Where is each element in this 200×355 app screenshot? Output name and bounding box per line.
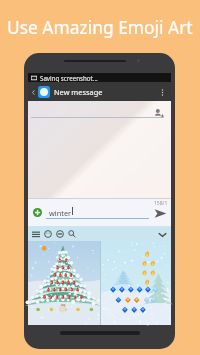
button[interactable]: Add attachment bbox=[33, 208, 42, 217]
button[interactable]: Back bbox=[29, 88, 37, 96]
button[interactable] bbox=[101, 241, 171, 325]
staticText: winter bbox=[49, 208, 72, 218]
button[interactable] bbox=[28, 241, 100, 325]
staticText: Use Amazing Emoji Art bbox=[7, 15, 193, 39]
button[interactable]: Send bbox=[152, 205, 168, 221]
button[interactable]: Menu bbox=[30, 228, 42, 240]
button[interactable]: Collapse bbox=[155, 227, 169, 241]
staticText: New message bbox=[54, 87, 103, 97]
staticText: Saving screenshot... bbox=[40, 74, 98, 82]
staticText: 158/1 bbox=[154, 200, 168, 207]
button[interactable]: More options bbox=[155, 85, 169, 99]
button[interactable]: Stickers bbox=[54, 228, 66, 240]
button[interactable]: Emoji bbox=[42, 228, 54, 240]
button[interactable]: Add person bbox=[152, 106, 165, 119]
button[interactable]: Search bbox=[66, 228, 78, 240]
